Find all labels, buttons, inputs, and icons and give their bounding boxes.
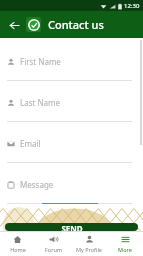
staticText: Last Name (20, 97, 61, 108)
staticText: Home (10, 246, 26, 253)
staticText: More (118, 246, 132, 253)
button[interactable]: Back (5, 16, 23, 34)
button[interactable]: Home (0, 231, 35, 256)
button[interactable]: Message (0, 174, 143, 215)
staticText: Email (20, 138, 41, 149)
button[interactable]: Last Name (0, 92, 143, 133)
button[interactable]: First Name (0, 51, 143, 92)
staticText: Contact us (48, 17, 104, 32)
staticText: SEND (61, 223, 83, 231)
button[interactable]: More (107, 231, 143, 256)
button[interactable]: Email (0, 133, 143, 174)
staticText: Message (20, 179, 54, 190)
button[interactable]: My Profile (71, 231, 107, 256)
staticText: First Name (20, 56, 61, 67)
staticText: 12:30 (124, 2, 140, 10)
button[interactable]: SEND (5, 223, 138, 231)
button[interactable]: Forum (35, 231, 71, 256)
staticText: Forum (45, 246, 62, 253)
staticText: My Profile (76, 246, 102, 253)
